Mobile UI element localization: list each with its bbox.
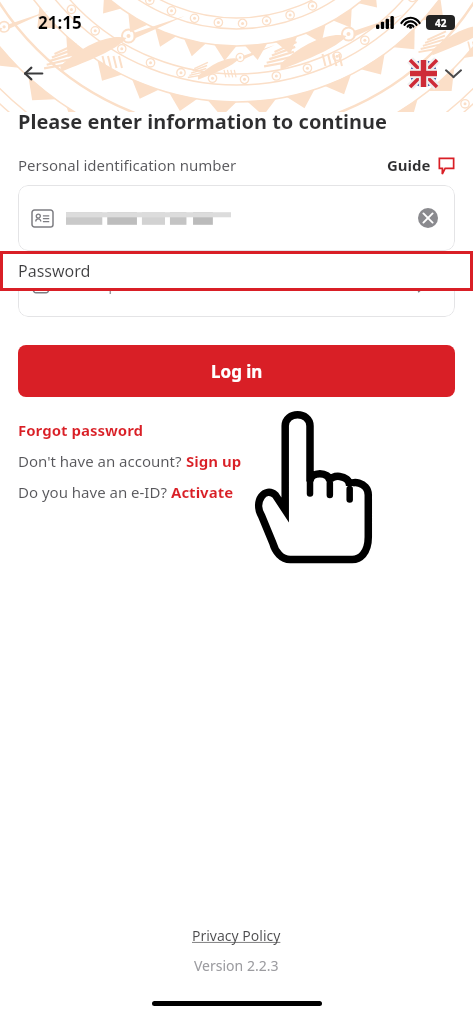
staticText: Forgot password	[18, 420, 144, 440]
staticText: Please enter information to continue	[18, 108, 387, 135]
button[interactable]: Show password	[411, 268, 443, 300]
staticText: Enter password	[64, 273, 181, 295]
button[interactable]: Privacy Policy	[192, 926, 281, 945]
staticText: Personal identification number	[18, 155, 237, 175]
staticText: Privacy Policy	[192, 926, 281, 945]
staticText: Don't have an account?	[18, 451, 186, 471]
button[interactable]: Enter password	[18, 251, 455, 317]
button[interactable]: Forgot password	[18, 420, 144, 440]
staticText: 42	[435, 16, 447, 30]
staticText: Activate	[171, 482, 234, 502]
staticText: Guide	[387, 155, 431, 175]
button[interactable]: Log in	[18, 345, 455, 397]
button[interactable]: Clear	[413, 203, 443, 233]
button[interactable]: Back	[10, 50, 56, 96]
staticText: Password	[18, 260, 91, 282]
button[interactable]: Clear	[18, 185, 455, 251]
staticText: Do you have an e-ID?	[18, 482, 171, 502]
staticText: Sign up	[186, 451, 242, 471]
button[interactable]: Don't have an account?	[18, 451, 242, 471]
button[interactable]: Change language	[410, 60, 461, 87]
staticText: 21:15	[38, 11, 82, 34]
staticText: Version 2.2.3	[194, 956, 279, 975]
button[interactable]: Do you have an e-ID?	[18, 482, 234, 502]
button[interactable]: Guide	[387, 155, 455, 175]
staticText: Log in	[211, 360, 263, 383]
